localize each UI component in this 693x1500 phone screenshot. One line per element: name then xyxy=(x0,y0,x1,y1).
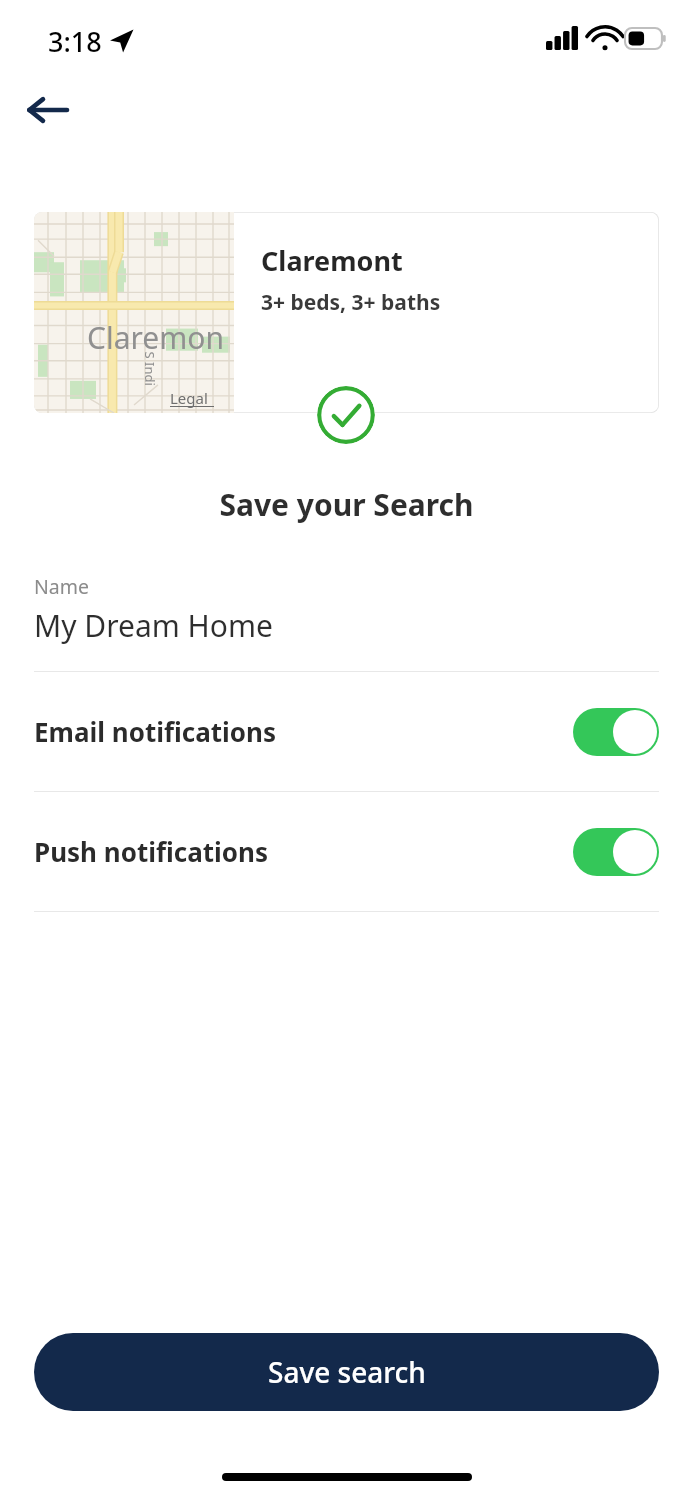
staticText: Legal xyxy=(170,388,208,408)
button[interactable]: Claremon xyxy=(34,212,659,413)
staticText: Save your Search xyxy=(0,484,693,525)
staticText: 3+ beds, 3+ baths xyxy=(261,288,441,317)
staticText: 3:18 xyxy=(48,23,102,60)
button[interactable]: Back xyxy=(16,80,78,140)
button[interactable]: Email notifications xyxy=(34,672,659,791)
button[interactable]: Push notifications xyxy=(34,792,659,911)
staticText: Claremont xyxy=(261,242,403,279)
staticText: Email notifications xyxy=(34,714,573,749)
staticText: Claremon xyxy=(87,317,224,358)
staticText: Push notifications xyxy=(34,834,573,869)
staticText: S Indi xyxy=(140,351,158,386)
staticText: My Dream Home xyxy=(34,605,273,646)
button[interactable]: Save search xyxy=(34,1333,659,1411)
staticText: Name xyxy=(34,573,89,600)
staticText: Save search xyxy=(268,1353,426,1391)
